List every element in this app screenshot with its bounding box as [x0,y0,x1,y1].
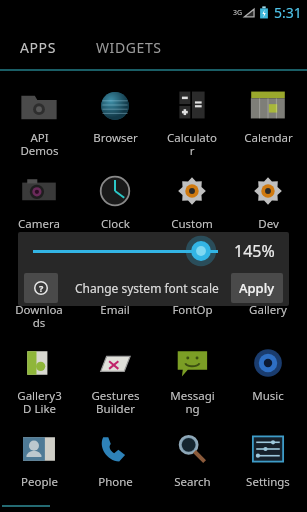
staticText: Music [252,388,284,404]
staticText: Email [100,302,130,318]
button[interactable]: Music [230,335,306,421]
button[interactable]: Calculato r [154,77,230,163]
button[interactable]: Calendar [230,77,306,163]
button[interactable]: FontOp [154,249,230,335]
button[interactable]: Phone [77,421,153,507]
button[interactable]: Settings [230,421,306,507]
staticText: API Demos [20,130,59,159]
button[interactable]: Camera [1,163,77,249]
button[interactable]: API Demos [1,77,77,163]
staticText: 145% [234,240,275,262]
staticText: Custom [171,216,213,232]
button[interactable]: Email [77,249,153,335]
button[interactable]: Gallery3 D Like [1,335,77,421]
staticText: FontOp [172,302,213,318]
staticText: Calculato r [167,130,217,159]
button[interactable]: People [1,421,77,507]
staticText: Change system font scale [75,280,219,296]
button[interactable]: Downloa ds [1,249,77,335]
staticText: Gallery [249,302,287,318]
staticText: Browser [93,130,138,146]
staticText: Messagi ng [170,388,215,417]
button[interactable]: Dev [230,163,306,249]
button[interactable]: Custom [154,163,230,249]
staticText: ? [39,282,44,294]
staticText: People [21,474,58,490]
staticText: Settings [246,474,290,490]
button[interactable]: Browser [77,77,153,163]
staticText: Downloa ds [15,302,63,331]
staticText: Clock [101,216,130,232]
button[interactable]: Gallery [230,249,306,335]
staticText: 3G [233,8,243,18]
staticText: Phone [98,474,133,490]
staticText: Dev [258,216,279,232]
button[interactable]: Apply [231,273,283,303]
staticText: Apply [239,279,275,297]
staticText: WIDGETS [96,38,162,57]
staticText: Search [174,474,211,490]
staticText: APPS [20,38,56,57]
staticText: Gestures Builder [91,388,140,417]
staticText: Gallery3 D Like [17,388,62,417]
button[interactable]: WIDGETS [94,32,164,63]
staticText: Calendar [244,130,293,146]
button[interactable]: Search [154,421,230,507]
button[interactable]: Messagi ng [154,335,230,421]
staticText: 5:31 [274,3,302,22]
button[interactable]: Gestures Builder [77,335,153,421]
button[interactable]: Help [24,273,58,303]
button[interactable]: APPS [18,32,58,63]
button[interactable]: Font scale slider [181,232,221,270]
staticText: Camera [18,216,60,232]
button[interactable]: Clock [77,163,153,249]
